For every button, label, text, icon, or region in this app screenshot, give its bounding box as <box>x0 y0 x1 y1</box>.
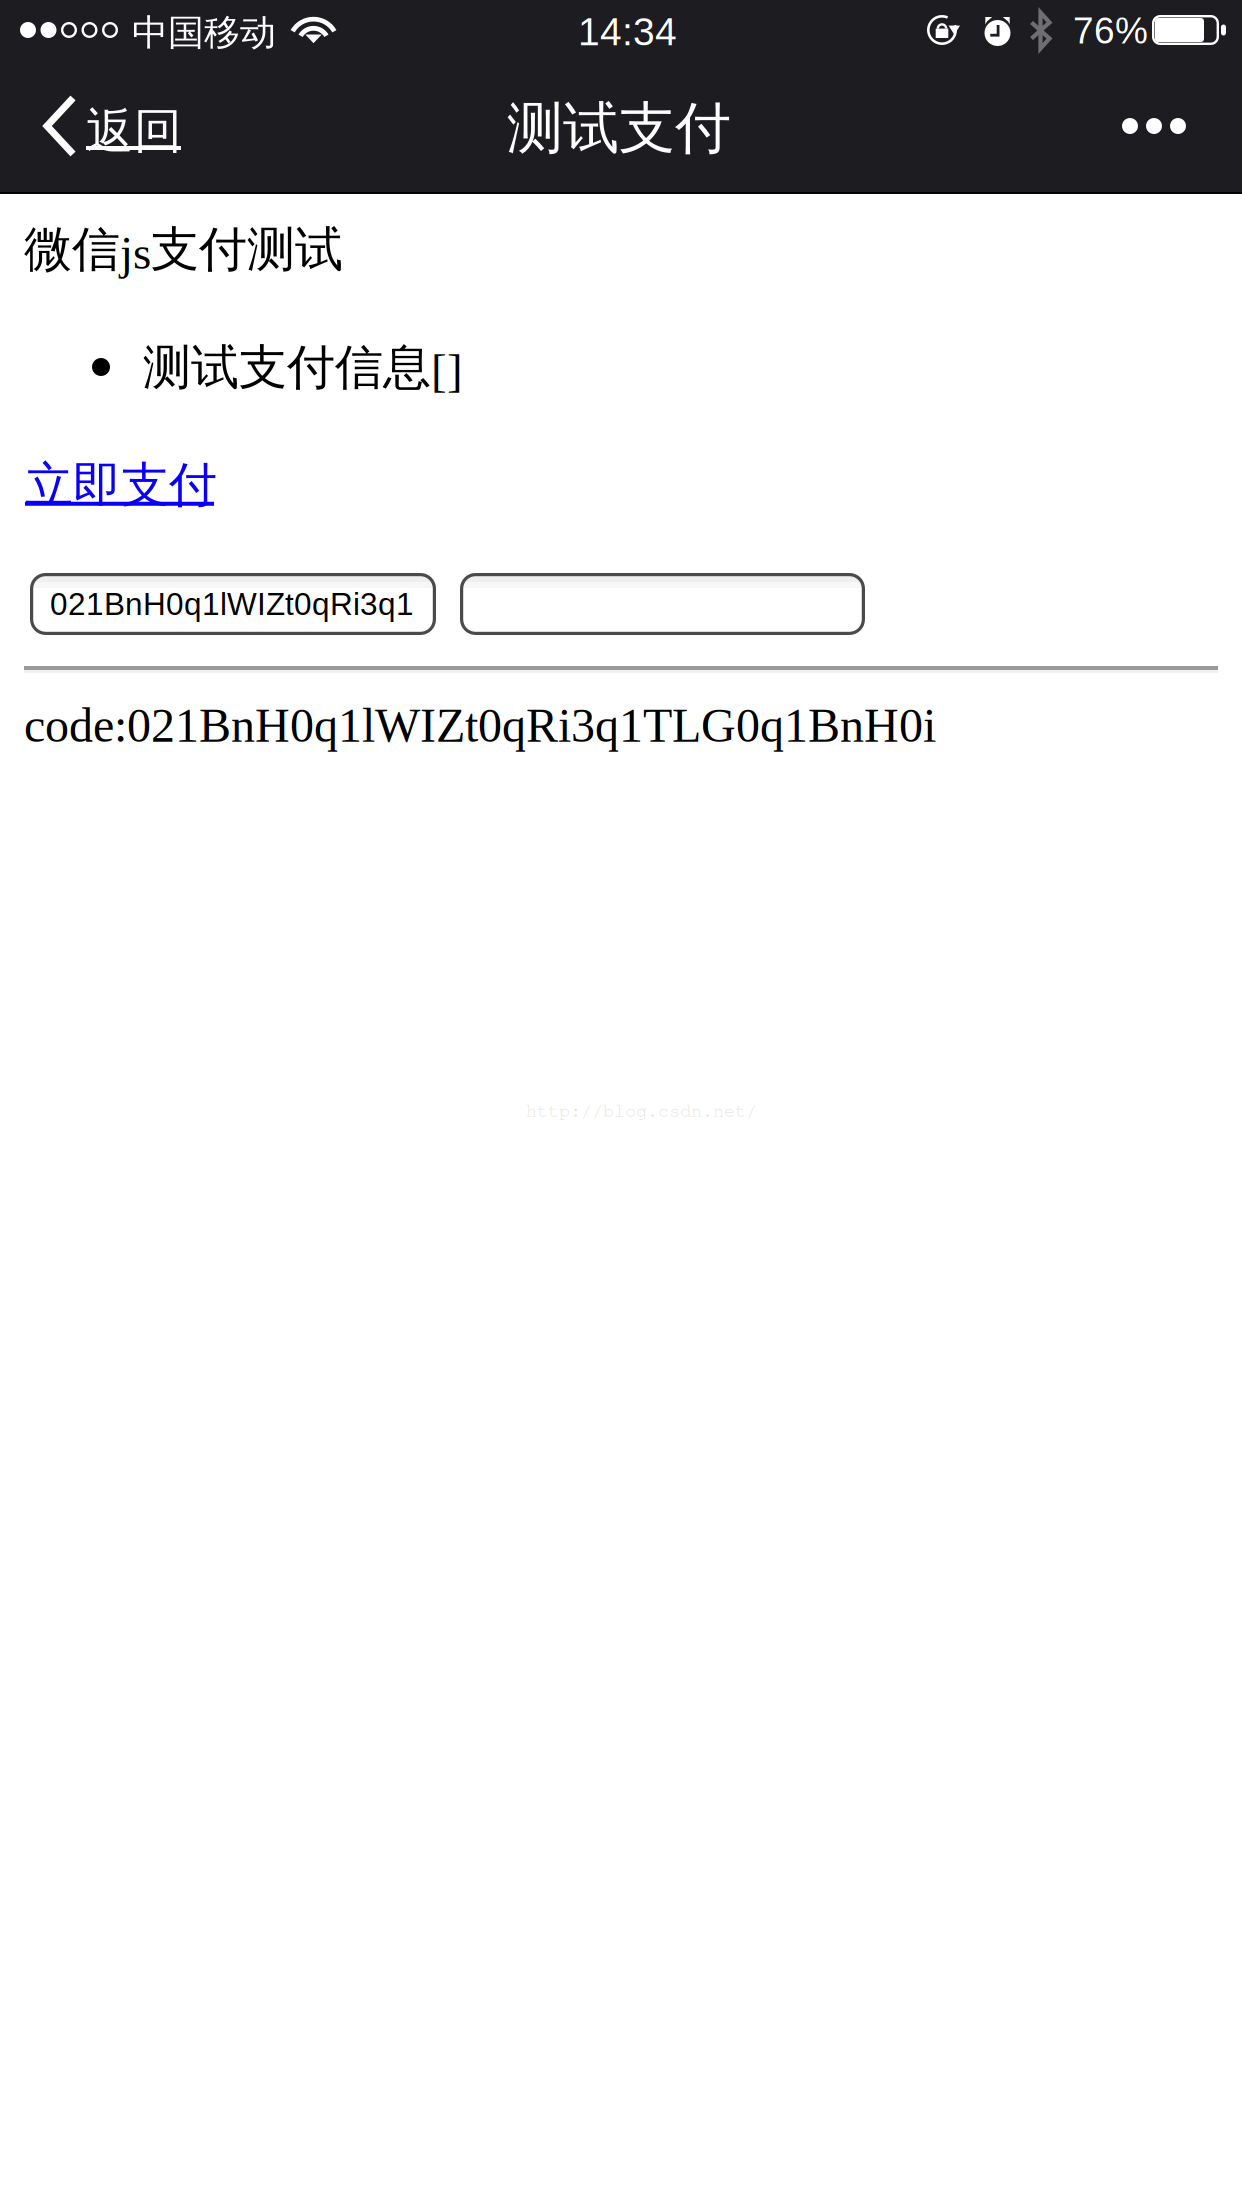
button[interactable]: More options <box>1089 65 1219 187</box>
staticText: http://blog.csdn.net/ <box>526 1099 757 1121</box>
staticText: 76% <box>1073 10 1148 51</box>
staticText: 返回 <box>86 101 182 161</box>
staticText: 立即支付 <box>25 455 217 515</box>
staticText: code:021BnH0q1lWIZt0qRi3q1TLG0q1BnH0i <box>24 699 936 752</box>
button[interactable]: Authorisation code field <box>30 573 436 635</box>
staticText: 测试支付信息[] <box>143 338 463 397</box>
staticText: 微信js支付测试 <box>24 220 343 279</box>
button[interactable]: Second input field <box>460 573 865 635</box>
staticText: 021BnH0q1lWIZt0qRi3q1 <box>50 586 414 622</box>
staticText: 14:34 <box>578 10 677 54</box>
staticText: 测试支付 <box>507 93 731 163</box>
button[interactable]: 立即支付 <box>25 458 217 512</box>
staticText: 中国移动 <box>132 10 276 55</box>
button[interactable]: 返回 <box>0 70 185 192</box>
